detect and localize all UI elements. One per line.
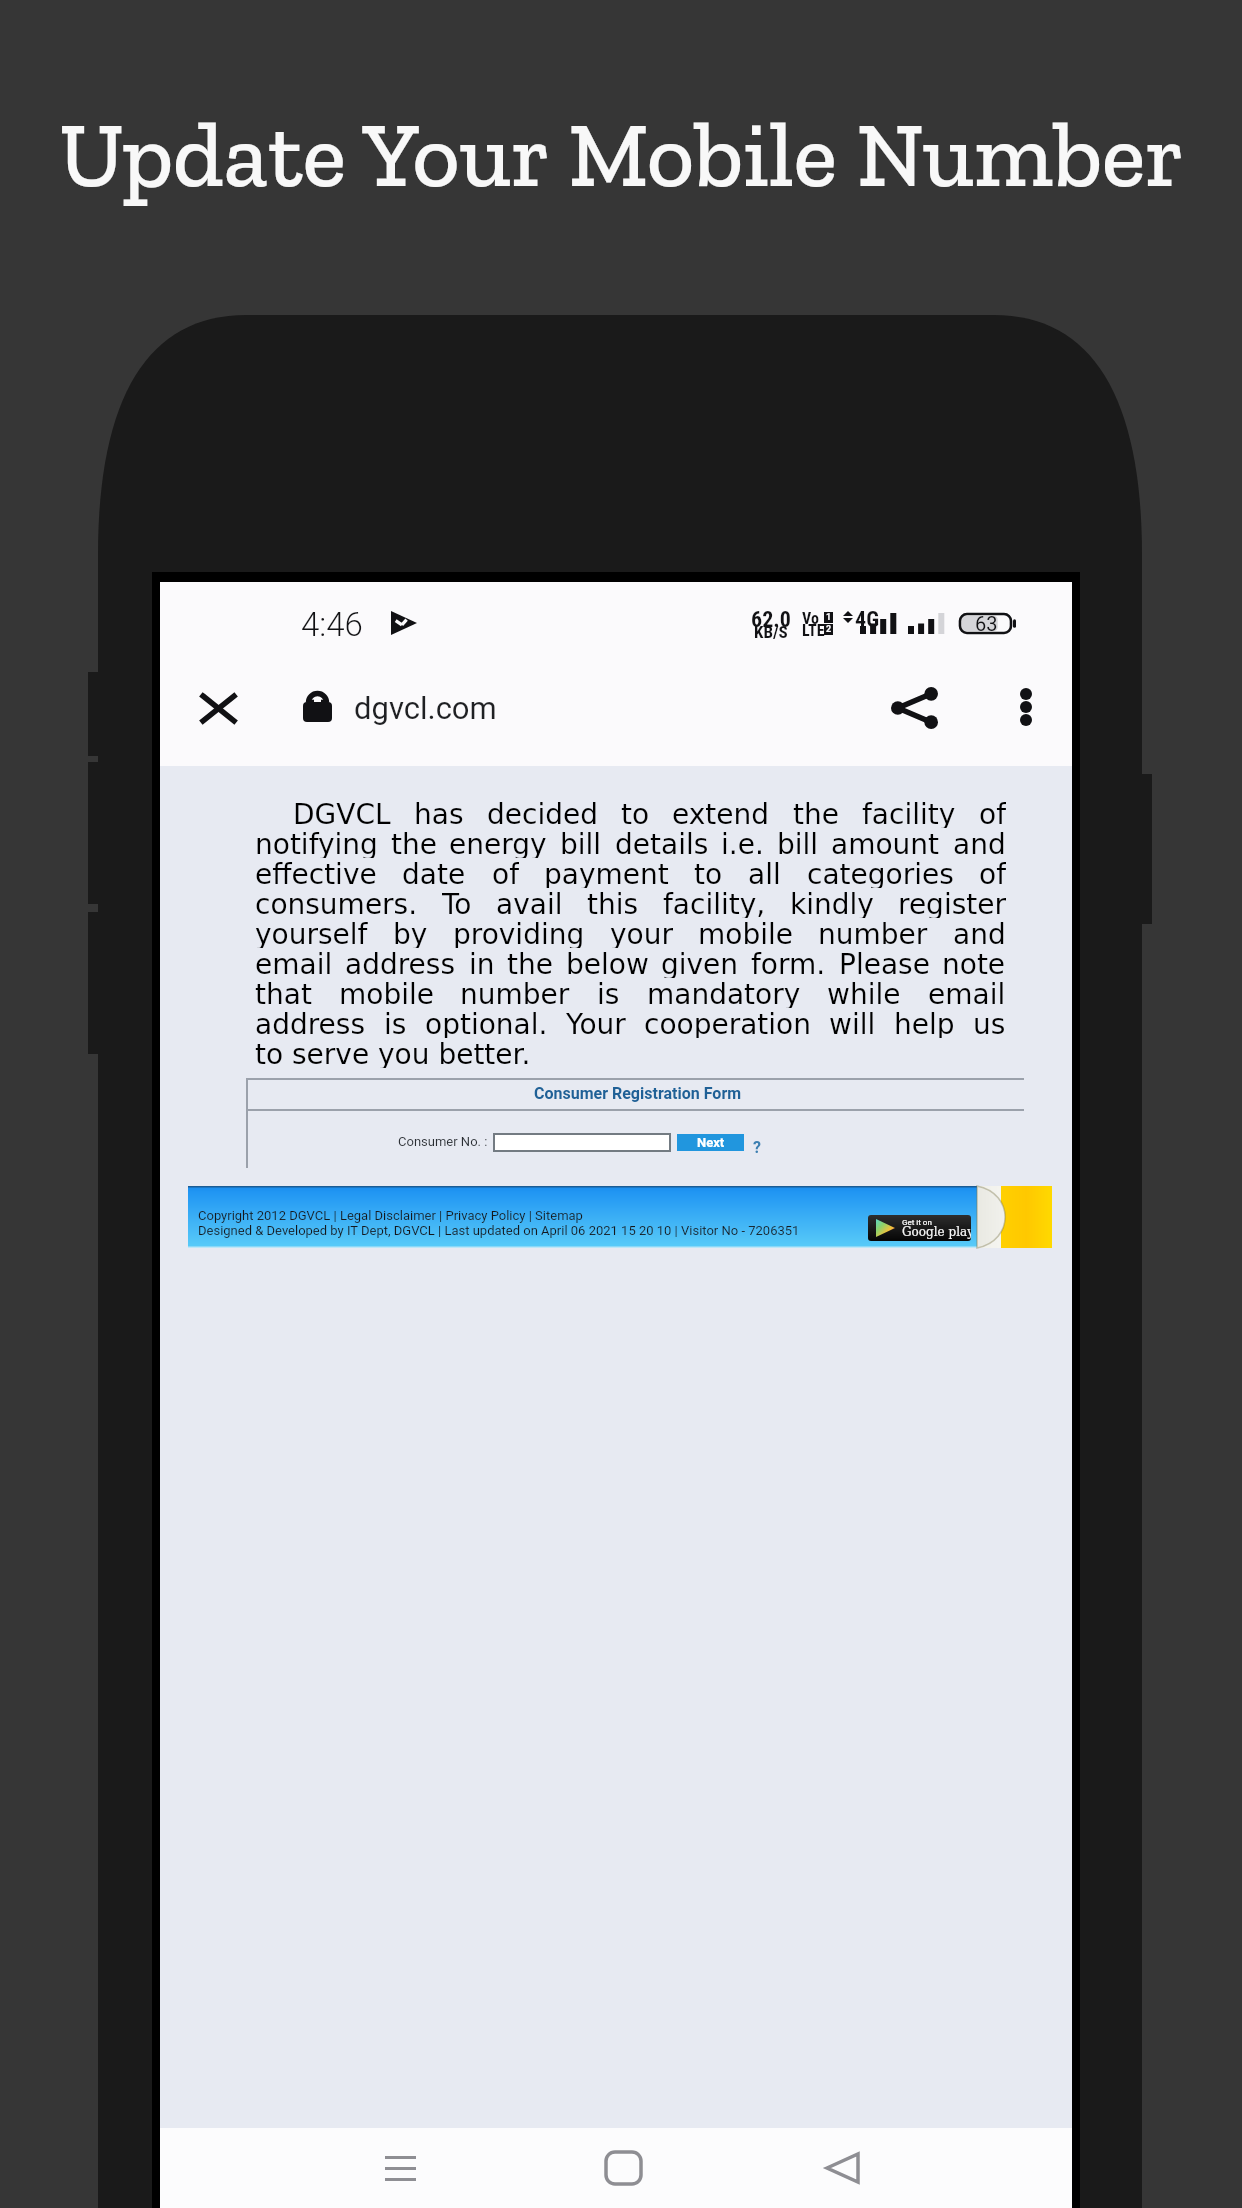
staticText: yourself: [255, 918, 368, 948]
staticText: to serve you better.: [255, 1038, 531, 1068]
staticText: in: [469, 948, 495, 978]
staticText: the: [507, 948, 553, 978]
staticText: LTE: [802, 621, 825, 640]
staticText: avail: [496, 888, 563, 918]
staticText: facility,: [663, 888, 766, 918]
staticText: Consumer Registration Form: [534, 1084, 742, 1103]
staticText: providing: [453, 918, 585, 948]
button[interactable]: More options: [992, 673, 1060, 741]
staticText: Next: [697, 1135, 725, 1150]
button[interactable]: Back: [782, 2128, 903, 2208]
staticText: and: [953, 828, 1006, 858]
button[interactable]: Home: [563, 2128, 684, 2208]
staticText: decided: [487, 798, 598, 828]
button[interactable]: Share: [880, 674, 948, 742]
staticText: Consumer No. :: [398, 1134, 488, 1149]
staticText: the: [793, 798, 839, 828]
staticText: mandatory: [647, 978, 801, 1008]
staticText: number: [460, 978, 570, 1008]
staticText: while: [827, 978, 901, 1008]
staticText: of: [979, 858, 1006, 888]
staticText: email: [928, 978, 1006, 1008]
staticText: will: [829, 1008, 876, 1038]
staticText: to: [694, 858, 723, 888]
staticText: that: [255, 978, 312, 1008]
button[interactable]: Recent apps: [340, 2128, 461, 2208]
button[interactable]: Next: [677, 1134, 744, 1151]
staticText: ?: [753, 1138, 761, 1157]
staticText: bill: [777, 828, 819, 858]
staticText: notifying: [255, 828, 378, 858]
staticText: dgvcl.com: [354, 690, 497, 726]
staticText: Google play: [902, 1225, 971, 1239]
staticText: Get it on: [902, 1218, 932, 1227]
staticText: bill: [560, 828, 602, 858]
staticText: Copyright 2012 DGVCL | Legal Disclaimer …: [198, 1208, 583, 1223]
staticText: your: [610, 918, 673, 948]
staticText: 4G: [855, 607, 880, 633]
staticText: 62.0: [751, 607, 791, 633]
staticText: of: [979, 798, 1006, 828]
staticText: Your: [566, 1008, 626, 1038]
staticText: i.e.: [721, 828, 764, 858]
staticText: 4:46: [301, 605, 363, 644]
button[interactable]: [494, 1134, 670, 1151]
staticText: extend: [672, 798, 770, 828]
staticText: note: [942, 948, 1006, 978]
staticText: the: [391, 828, 437, 858]
staticText: 2: [826, 624, 832, 635]
staticText: DGVCL: [293, 798, 391, 828]
staticText: us: [973, 1008, 1006, 1038]
staticText: register: [898, 888, 1006, 918]
staticText: mobile: [698, 918, 793, 948]
staticText: to: [621, 798, 650, 828]
staticText: of: [492, 858, 519, 888]
staticText: To: [442, 888, 472, 918]
staticText: and: [953, 918, 1006, 948]
staticText: payment: [544, 858, 669, 888]
staticText: Update Your Mobile Number: [59, 100, 1184, 209]
staticText: address: [255, 1008, 366, 1038]
staticText: Vo: [802, 609, 819, 628]
staticText: effective: [255, 858, 377, 888]
staticText: below: [566, 948, 649, 978]
staticText: facility: [862, 798, 956, 828]
staticText: email: [255, 948, 333, 978]
staticText: mobile: [339, 978, 434, 1008]
staticText: is: [597, 978, 620, 1008]
staticText: address: [345, 948, 456, 978]
staticText: this: [587, 888, 639, 918]
staticText: energy: [449, 828, 547, 858]
staticText: by: [393, 918, 428, 948]
staticText: kindly: [790, 888, 874, 918]
staticText: amount: [831, 828, 940, 858]
staticText: consumers.: [255, 888, 418, 918]
staticText: given: [661, 948, 739, 978]
staticText: has: [414, 798, 464, 828]
staticText: Please: [839, 948, 930, 978]
staticText: help: [894, 1008, 955, 1038]
staticText: Designed & Developed by IT Dept, DGVCL |…: [198, 1223, 800, 1238]
staticText: details: [615, 828, 709, 858]
staticText: all: [748, 858, 781, 888]
staticText: optional.: [425, 1008, 548, 1038]
staticText: 1: [826, 612, 832, 623]
staticText: cooperation: [644, 1008, 811, 1038]
staticText: is: [384, 1008, 407, 1038]
staticText: categories: [807, 858, 954, 888]
staticText: KB/S: [754, 622, 788, 642]
staticText: number: [818, 918, 928, 948]
button[interactable]: Get it on: [868, 1215, 971, 1241]
button[interactable]: Close tab: [180, 670, 256, 746]
staticText: 63: [975, 612, 998, 633]
staticText: date: [402, 858, 466, 888]
staticText: form.: [751, 948, 826, 978]
